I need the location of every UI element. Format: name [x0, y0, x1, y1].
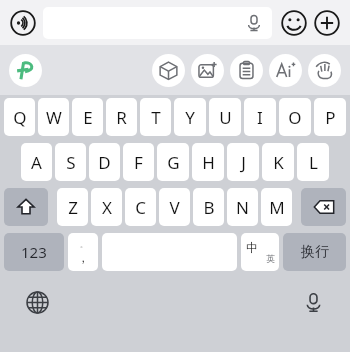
staticText: D [98, 151, 111, 174]
staticText: 中 [246, 240, 258, 255]
staticText: C [135, 196, 146, 219]
button[interactable]: G [157, 143, 189, 181]
staticText: 123 [21, 242, 47, 262]
button[interactable]: R [106, 98, 137, 136]
button[interactable]: W [38, 98, 69, 136]
button[interactable]: F [123, 143, 154, 181]
button[interactable]: J [227, 143, 259, 181]
button[interactable]: C [125, 188, 156, 226]
button[interactable]: P [314, 98, 346, 136]
button[interactable]: Punctuation [68, 233, 98, 271]
staticText: E [83, 106, 93, 129]
staticText: 。 [80, 240, 87, 249]
button[interactable]: S [55, 143, 86, 181]
button[interactable]: Chinese English toggle [241, 233, 279, 271]
button[interactable]: Backspace [301, 188, 346, 226]
button[interactable]: O [279, 98, 311, 136]
staticText: V [169, 196, 180, 219]
staticText: Y [185, 106, 195, 129]
button[interactable]: X [91, 188, 122, 226]
staticText: K [273, 151, 284, 174]
button[interactable]: U [209, 98, 241, 136]
button[interactable]: 换行 [283, 233, 346, 271]
button[interactable]: Emoji [280, 9, 308, 37]
staticText: X [102, 196, 112, 219]
button[interactable]: Change language [22, 287, 52, 317]
button[interactable]: Voice input [9, 9, 37, 37]
staticText: 英 [266, 253, 275, 264]
staticText: 换行 [301, 243, 329, 261]
button[interactable]: Dictate [244, 13, 264, 33]
staticText: ， [77, 250, 89, 265]
staticText: P [325, 106, 336, 129]
staticText: N [236, 196, 249, 219]
button[interactable]: Sticker [152, 54, 185, 87]
staticText: J [241, 151, 246, 174]
button[interactable]: Q [4, 98, 35, 136]
staticText: Z [68, 196, 78, 219]
button[interactable]: Shift [4, 188, 48, 226]
staticText: W [46, 106, 62, 129]
button[interactable]: Keyboard logo [9, 54, 42, 87]
staticText: A [31, 151, 42, 174]
button[interactable]: M [261, 188, 292, 226]
button[interactable]: T [140, 98, 171, 136]
staticText: B [203, 196, 215, 219]
staticText: Q [13, 106, 27, 129]
button[interactable]: Z [57, 188, 88, 226]
button[interactable]: B [193, 188, 224, 226]
staticText: G [167, 151, 180, 174]
button[interactable]: Dictate [43, 7, 272, 39]
button[interactable]: More options [313, 9, 341, 37]
button[interactable]: D [89, 143, 120, 181]
button[interactable]: K [262, 143, 294, 181]
staticText: S [66, 151, 76, 174]
staticText: I [257, 106, 263, 129]
button[interactable]: N [227, 188, 258, 226]
button[interactable]: A [21, 143, 52, 181]
button[interactable]: Y [174, 98, 206, 136]
button[interactable]: Handwriting [308, 54, 341, 87]
staticText: T [151, 106, 161, 129]
staticText: L [309, 151, 318, 174]
staticText: U [219, 106, 232, 129]
button[interactable]: L [297, 143, 329, 181]
button[interactable]: I [244, 98, 276, 136]
button[interactable]: H [192, 143, 224, 181]
button[interactable]: Clipboard [230, 54, 263, 87]
staticText: M [269, 196, 285, 219]
staticText: H [202, 151, 215, 174]
button[interactable]: E [72, 98, 103, 136]
staticText: O [288, 106, 302, 129]
button[interactable]: Image [191, 54, 224, 87]
button[interactable]: Voice typing [298, 287, 328, 317]
button[interactable]: 123 [4, 233, 64, 271]
button[interactable]: V [159, 188, 190, 226]
button[interactable]: AI assistant [269, 54, 302, 87]
staticText: F [134, 151, 143, 174]
staticText: R [116, 106, 127, 129]
